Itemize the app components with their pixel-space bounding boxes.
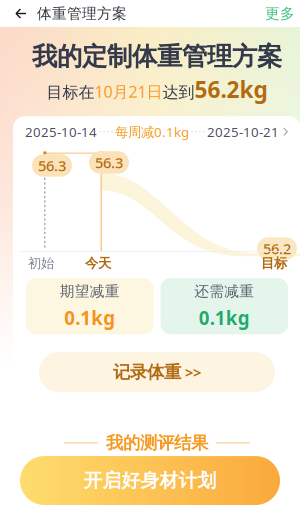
- button[interactable]: 2025-10-14: [13, 116, 300, 147]
- staticText: 2025-10-14: [25, 123, 97, 141]
- staticText: 今天: [85, 255, 111, 272]
- staticText: 2025-10-21: [207, 123, 279, 141]
- staticText: 56.3: [38, 156, 66, 175]
- staticText: 56.2: [263, 239, 291, 258]
- staticText: 还需减重: [194, 282, 254, 300]
- button[interactable]: 开启好身材计划: [0, 456, 300, 505]
- button[interactable]: 更多: [265, 4, 300, 22]
- staticText: 每周减0.1kg: [115, 123, 189, 141]
- staticText: 56.3: [95, 153, 123, 172]
- button[interactable]: 记录体重: [13, 334, 300, 392]
- staticText: 初始: [28, 255, 54, 272]
- staticText: >>: [185, 362, 201, 382]
- staticText: 0.1kg: [199, 305, 250, 330]
- staticText: 56.2kg: [194, 74, 267, 104]
- staticText: 体重管理方案: [37, 4, 127, 22]
- staticText: 我的测评结果: [106, 432, 208, 453]
- staticText: 目标在: [46, 83, 94, 102]
- staticText: 10月21日: [94, 81, 162, 102]
- staticText: 开启好身材计划: [83, 469, 216, 492]
- staticText: 目标: [261, 255, 287, 272]
- staticText: 期望减重: [60, 282, 120, 300]
- staticText: 达到: [162, 83, 194, 102]
- staticText: 0.1kg: [64, 305, 115, 330]
- staticText: 更多: [265, 4, 295, 22]
- staticText: 记录体重: [113, 362, 181, 383]
- button[interactable]: 返回: [7, 0, 37, 27]
- staticText: 我的定制体重管理方案: [32, 41, 282, 72]
